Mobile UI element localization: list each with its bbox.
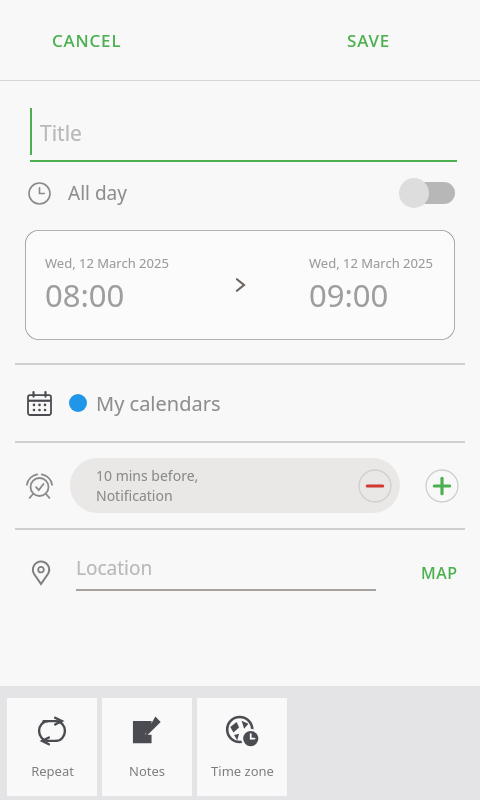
button[interactable]: Location xyxy=(0,530,480,615)
button[interactable]: 10 mins before, xyxy=(70,458,400,513)
staticText: 10 mins before, xyxy=(96,466,199,485)
button[interactable]: Time zone xyxy=(197,698,287,796)
button[interactable]: Repeat xyxy=(7,698,97,796)
button[interactable]: Wed, 12 March 2025 xyxy=(25,230,455,340)
staticText: 09:00 xyxy=(309,274,389,316)
staticText: My calendars xyxy=(96,390,221,417)
button[interactable]: All day xyxy=(0,162,480,224)
button[interactable]: SAVE xyxy=(335,19,402,62)
button[interactable]: My calendars xyxy=(0,365,480,441)
button[interactable]: Title xyxy=(0,81,480,162)
staticText: SAVE xyxy=(347,29,390,52)
other: Change times xyxy=(231,276,249,294)
button[interactable]: Remove reminder xyxy=(358,469,392,503)
staticText: All day xyxy=(68,180,127,206)
button[interactable]: Notes xyxy=(102,698,192,796)
staticText: Time zone xyxy=(211,762,274,780)
button[interactable]: Add reminder xyxy=(425,469,459,503)
staticText: CANCEL xyxy=(52,29,122,52)
button[interactable]: All day toggle xyxy=(399,176,455,210)
staticText: Notes xyxy=(129,762,165,780)
staticText: Notification xyxy=(96,486,173,505)
button[interactable]: MAP xyxy=(411,554,468,592)
staticText: Wed, 12 March 2025 xyxy=(309,254,433,272)
staticText: Wed, 12 March 2025 xyxy=(45,254,169,272)
staticText: Repeat xyxy=(31,762,74,780)
staticText: MAP xyxy=(421,562,458,584)
button[interactable]: CANCEL xyxy=(40,19,134,62)
staticText: Title xyxy=(40,119,82,148)
staticText: 08:00 xyxy=(45,274,125,316)
staticText: Location xyxy=(76,555,153,581)
